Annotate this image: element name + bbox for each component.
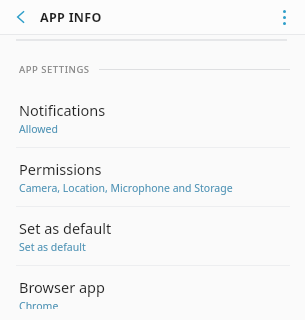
button[interactable]: More options	[267, 0, 301, 34]
button[interactable]: Set as default	[0, 207, 305, 265]
staticText: Allowed	[19, 122, 58, 136]
staticText: Set as default	[19, 218, 112, 238]
staticText: Camera, Location, Microphone and Storage	[19, 181, 233, 195]
staticText: Notifications	[19, 100, 106, 120]
button[interactable]: Permissions	[0, 148, 305, 206]
staticText: Permissions	[19, 159, 102, 179]
staticText: Browser app	[19, 277, 105, 297]
button[interactable]: Back	[4, 0, 38, 34]
staticText: Chrome	[19, 299, 59, 309]
staticText: APP SETTINGS	[19, 63, 90, 76]
staticText: Set as default	[19, 240, 86, 254]
button[interactable]: Notifications	[0, 89, 305, 147]
button[interactable]: Browser app	[0, 266, 305, 320]
staticText: APP INFO	[40, 9, 102, 26]
